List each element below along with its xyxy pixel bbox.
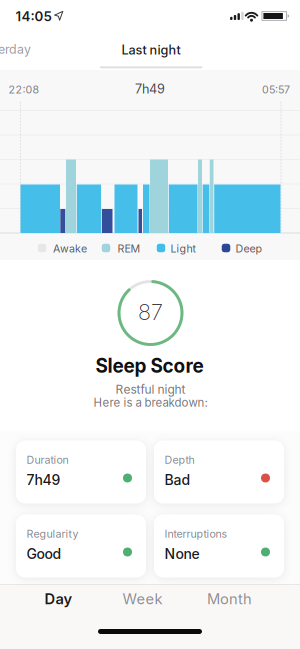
button[interactable]: Duration [16, 440, 146, 503]
staticText: erday [0, 42, 31, 57]
staticText: Regularity [26, 527, 78, 540]
button[interactable]: Interruptions [154, 514, 284, 577]
staticText: 22:08 [8, 83, 39, 96]
staticText: Week [122, 590, 162, 608]
staticText: Deep [235, 242, 262, 255]
button[interactable]: Month [197, 585, 261, 613]
staticText: Awake [53, 242, 87, 255]
staticText: Duration [26, 453, 68, 466]
button[interactable]: Day [28, 585, 88, 613]
staticText: Last night [121, 42, 180, 58]
staticText: Good [26, 545, 61, 562]
staticText: 05:57 [262, 83, 290, 96]
staticText: 87 [138, 299, 163, 325]
staticText: Day [44, 590, 72, 608]
staticText: REM [117, 242, 140, 255]
button[interactable]: Last night [100, 37, 202, 63]
button[interactable]: Week [112, 585, 172, 613]
staticText: 7h49 [135, 81, 165, 97]
button[interactable]: erday [0, 42, 31, 57]
staticText: None [164, 545, 199, 562]
staticText: Light [170, 242, 195, 255]
staticText: Depth [164, 453, 194, 466]
staticText: Restful night [115, 382, 185, 396]
staticText: 7h49 [26, 471, 60, 488]
staticText: Bad [164, 471, 190, 488]
button[interactable]: Regularity [16, 514, 146, 577]
staticText: Month [207, 590, 252, 608]
staticText: Sleep Score [95, 354, 203, 377]
button[interactable]: Depth [154, 440, 284, 503]
staticText: 14:05 [15, 8, 51, 24]
staticText: Interruptions [164, 527, 227, 540]
staticText: Here is a breakdown: [93, 396, 207, 409]
